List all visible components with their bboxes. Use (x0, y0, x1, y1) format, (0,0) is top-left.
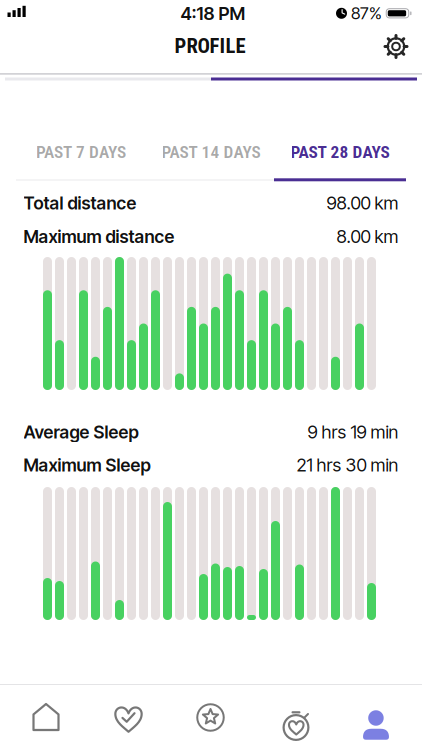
staticText: Maximum Sleep (23, 454, 150, 476)
staticText: 87% (351, 3, 382, 23)
button[interactable]: Settings (382, 32, 410, 60)
staticText: PROFILE (174, 34, 245, 58)
staticText: PAST 14 DAYS (161, 142, 260, 162)
button[interactable]: Profile (355, 695, 397, 741)
button[interactable]: PAST 7 DAYS (16, 137, 146, 167)
button[interactable]: Goals (106, 698, 150, 740)
button[interactable]: Activity (271, 697, 315, 744)
staticText: 8.00 km (336, 226, 398, 247)
staticText: 21 hrs 30 min (296, 454, 398, 476)
staticText: PAST 7 DAYS (36, 142, 126, 162)
staticText: 98.00 km (326, 192, 398, 214)
button[interactable]: Home (23, 694, 68, 740)
staticText: Total distance (23, 192, 136, 214)
staticText: 9 hrs 19 min (307, 421, 398, 443)
button[interactable]: PAST 28 DAYS (275, 137, 405, 167)
button[interactable]: Challenges (188, 695, 233, 740)
staticText: Maximum distance (23, 226, 174, 247)
button[interactable]: PAST 14 DAYS (146, 137, 276, 167)
staticText: PAST 28 DAYS (290, 142, 389, 162)
staticText: Average Sleep (23, 421, 138, 443)
staticText: 4:18 PM (180, 3, 245, 24)
